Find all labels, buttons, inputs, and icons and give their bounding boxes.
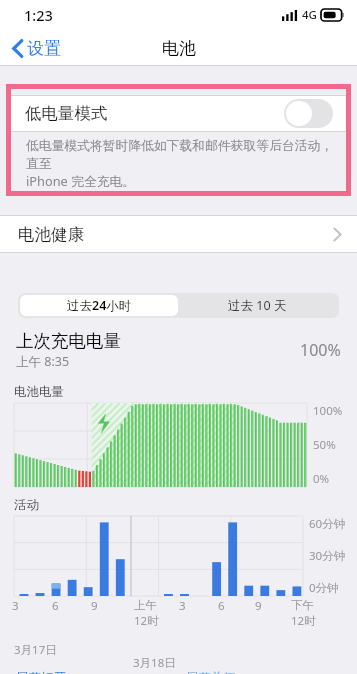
staticText: 6 — [218, 598, 225, 614]
staticText: 屏幕打开 — [16, 670, 66, 674]
staticText: 电池 — [162, 38, 196, 59]
staticText: 电池健康 — [18, 224, 84, 245]
staticText: 1:23 — [24, 5, 53, 25]
staticText: 上次充电电量 — [16, 330, 121, 352]
staticText: 3 — [12, 598, 19, 614]
staticText: 100% — [313, 403, 343, 419]
button[interactable]: 过去24小时 — [20, 295, 178, 316]
staticText: 3月18日 — [133, 655, 176, 668]
staticText: 0% — [313, 471, 330, 487]
staticText: 3月17日 — [14, 642, 57, 658]
staticText: 屏幕关闭 — [186, 670, 236, 674]
staticText: 50% — [313, 437, 336, 453]
staticText: 0分钟 — [309, 580, 339, 596]
staticText: 4G — [302, 7, 317, 23]
staticText: 电池电量 — [14, 384, 64, 400]
staticText: 过去 10 天 — [228, 297, 287, 314]
button[interactable]: 电池健康 — [0, 215, 357, 253]
staticText: 3 — [179, 598, 186, 614]
staticText: 9 — [255, 598, 262, 614]
staticText: 100% — [300, 339, 341, 361]
staticText: 低电量模式 — [25, 103, 108, 124]
staticText: 9 — [91, 598, 98, 614]
staticText: 下午 12时 — [291, 598, 316, 629]
staticText: 上午 8:35 — [16, 353, 70, 370]
staticText: 过去24小时 — [67, 297, 132, 314]
staticText: 低电量模式将暂时降低如下载和邮件获取等后台活动，直至 iPhone 完全充电。 — [26, 138, 336, 189]
staticText: 30分钟 — [309, 548, 346, 564]
button[interactable]: 低电量模式 — [11, 95, 346, 132]
staticText: 设置 — [27, 38, 61, 59]
staticText: 6 — [52, 598, 59, 614]
staticText: 60分钟 — [309, 516, 346, 532]
staticText: 活动 — [14, 497, 39, 513]
staticText: 上午 12时 — [134, 598, 159, 629]
button[interactable]: 过去 10 天 — [178, 295, 337, 316]
button[interactable]: 设置 — [8, 34, 65, 63]
button[interactable]: 低电量模式开关 — [284, 99, 333, 128]
